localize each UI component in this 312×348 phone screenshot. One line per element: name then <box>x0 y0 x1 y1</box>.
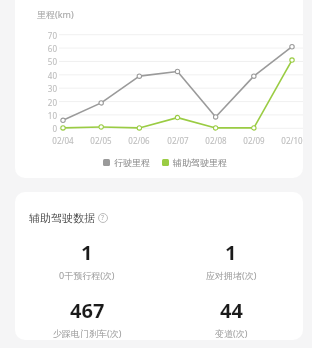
staticText: 02/09 <box>240 135 268 146</box>
staticText: 02/10 <box>278 135 303 146</box>
staticText: 02/04 <box>49 135 77 146</box>
staticText: 0 <box>41 123 57 134</box>
staticText: 02/06 <box>125 135 153 146</box>
staticText: 1 <box>81 239 93 266</box>
other: 帮助说明 <box>98 213 108 223</box>
staticText: 02/05 <box>87 135 115 146</box>
button[interactable]: 467 <box>15 295 159 340</box>
staticText: 467 <box>70 297 105 324</box>
button[interactable]: 44 <box>159 295 303 340</box>
staticText: 变道(次) <box>215 327 248 338</box>
staticText: 里程(km) <box>37 8 74 20</box>
button[interactable]: 1 <box>159 237 303 283</box>
staticText: 0干预行程(次) <box>59 269 115 281</box>
staticText: 辅助驾驶里程 <box>173 157 227 168</box>
staticText: 少踩电门刹车(次) <box>53 327 122 338</box>
staticText: 60 <box>41 43 57 54</box>
staticText: 辅助驾驶数据 <box>29 211 95 225</box>
staticText: 44 <box>220 297 243 324</box>
button[interactable]: 辅助驾驶数据 <box>27 209 110 227</box>
staticText: 02/07 <box>164 135 192 146</box>
staticText: 应对拥堵(次) <box>206 269 257 281</box>
staticText: 50 <box>41 56 57 67</box>
staticText: 1 <box>225 239 237 266</box>
staticText: 行驶里程 <box>114 157 150 168</box>
staticText: 40 <box>41 70 57 81</box>
button[interactable]: 1 <box>15 237 159 283</box>
staticText: 02/08 <box>202 135 230 146</box>
staticText: 10 <box>41 110 57 121</box>
staticText: 20 <box>41 97 57 108</box>
staticText: 70 <box>41 30 57 41</box>
staticText: ? <box>101 213 105 223</box>
staticText: 30 <box>41 83 57 94</box>
